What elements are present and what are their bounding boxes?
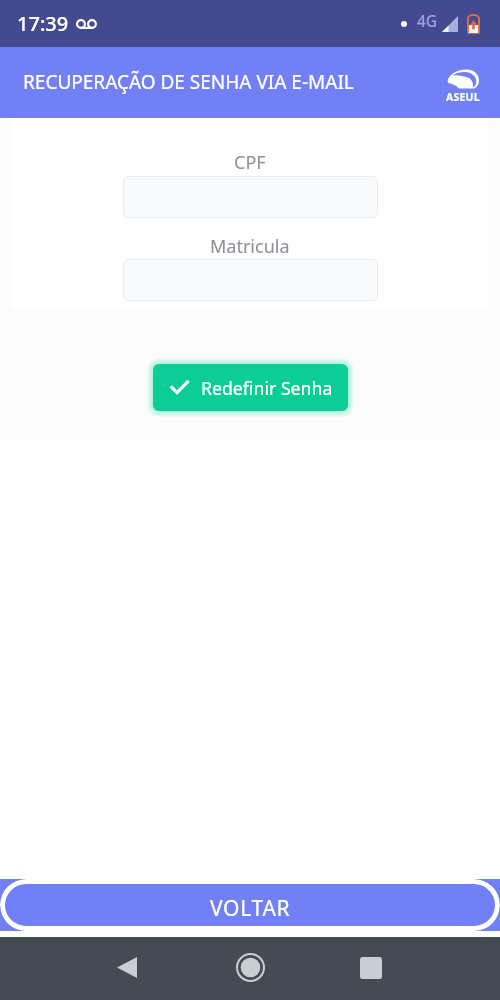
- button[interactable]: ASEUL logo: [439, 61, 487, 109]
- staticText: 4G: [417, 10, 438, 31]
- button[interactable]: Recent apps: [330, 937, 412, 1000]
- button[interactable]: Back: [86, 937, 168, 1000]
- staticText: RECUPERAÇÃO DE SENHA VIA E-MAIL: [23, 69, 354, 95]
- button[interactable]: [123, 176, 378, 218]
- staticText: VOLTAR: [210, 894, 291, 923]
- staticText: Redefinir Senha: [201, 376, 333, 400]
- staticText: Matricula: [210, 234, 290, 259]
- button[interactable]: VOLTAR: [0, 879, 500, 931]
- staticText: 17:39: [17, 10, 69, 37]
- staticText: ASEUL: [446, 90, 480, 104]
- button[interactable]: Home: [209, 937, 291, 1000]
- button[interactable]: Redefinir Senha: [153, 364, 348, 411]
- staticText: CPF: [234, 150, 266, 175]
- button[interactable]: [123, 259, 378, 301]
